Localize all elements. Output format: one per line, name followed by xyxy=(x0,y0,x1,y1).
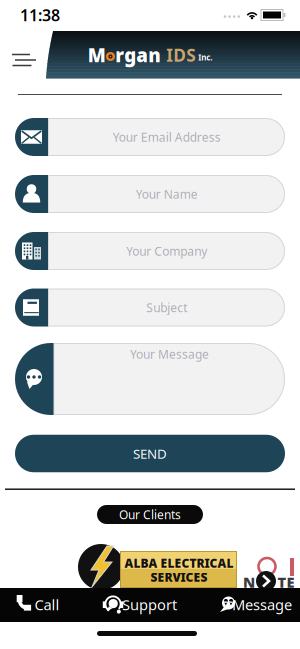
staticText: 11:38 xyxy=(20,4,60,26)
button[interactable]: Our Clients xyxy=(97,505,203,524)
button[interactable]: Your Message xyxy=(15,343,285,415)
staticText: Your Name xyxy=(136,186,198,202)
button[interactable]: Subject xyxy=(15,288,285,326)
staticText: IDS xyxy=(161,43,196,66)
button[interactable]: Your Email Address xyxy=(15,118,285,156)
button[interactable]: Your Company xyxy=(15,232,285,270)
button[interactable]: Call xyxy=(12,588,66,621)
button[interactable]: Your Name xyxy=(15,175,285,213)
button[interactable]: SEND xyxy=(15,435,285,472)
staticText: Your Company xyxy=(126,243,207,259)
staticText: SEND xyxy=(133,445,167,462)
staticText: Subject xyxy=(146,299,187,315)
button[interactable]: Support xyxy=(101,588,181,621)
button[interactable]: Message xyxy=(218,588,294,621)
staticText: Our Clients xyxy=(119,506,181,522)
staticText: Your Message xyxy=(130,346,209,362)
staticText: N xyxy=(243,572,255,592)
staticText: Your Email Address xyxy=(113,129,221,145)
staticText: TE xyxy=(277,572,294,592)
staticText: M xyxy=(88,43,106,67)
staticText: Call xyxy=(34,595,59,614)
staticText: rgan xyxy=(115,43,161,67)
staticText: ALBA ELECTRICAL xyxy=(124,555,233,571)
staticText: Inc. xyxy=(196,52,212,63)
staticText: SERVICES xyxy=(150,569,207,585)
button[interactable]: Menu xyxy=(2,38,42,78)
staticText: Support xyxy=(122,595,177,614)
staticText: Message xyxy=(232,595,292,614)
